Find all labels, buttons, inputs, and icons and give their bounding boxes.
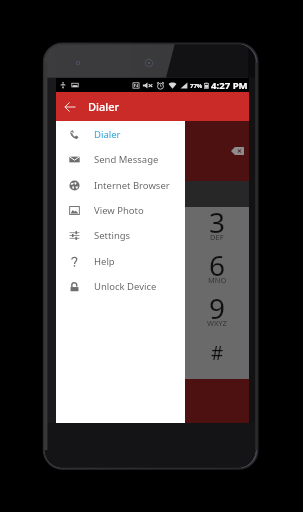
- staticText: 77%: [190, 82, 203, 90]
- staticText: #: [211, 340, 224, 366]
- staticText: Send Message: [94, 153, 159, 166]
- staticText: DEF: [210, 232, 224, 242]
- button[interactable]: Backspace: [231, 147, 244, 155]
- button[interactable]: 2: [121, 207, 185, 250]
- button[interactable]: Dialer: [56, 122, 185, 147]
- staticText: 5: [145, 246, 162, 284]
- button[interactable]: Settings: [56, 223, 185, 248]
- staticText: 4: [80, 246, 97, 284]
- staticText: Settings: [94, 229, 131, 242]
- button[interactable]: Send Message: [56, 147, 185, 172]
- staticText: View Photo: [94, 204, 144, 217]
- staticText: 4:27 PM: [211, 79, 248, 92]
- staticText: Unlock Device: [94, 280, 157, 293]
- staticText: Dialer: [94, 128, 121, 141]
- staticText: 8: [145, 289, 162, 327]
- button[interactable]: Back: [62, 99, 78, 115]
- staticText: 3: [209, 203, 226, 241]
- staticText: 7: [80, 289, 97, 327]
- staticText: Help: [94, 255, 115, 268]
- button[interactable]: 1: [56, 207, 121, 250]
- button[interactable]: 3: [185, 207, 249, 250]
- button[interactable]: Internet Browser: [56, 173, 185, 198]
- button[interactable]: 4: [56, 250, 121, 293]
- button[interactable]: Help: [56, 249, 185, 274]
- staticText: GHI: [82, 275, 96, 285]
- button[interactable]: #: [185, 336, 249, 379]
- staticText: Internet Browser: [94, 179, 170, 192]
- button[interactable]: View Photo: [56, 198, 185, 223]
- button[interactable]: 5: [121, 250, 185, 293]
- staticText: 1: [80, 203, 97, 241]
- button[interactable]: 6: [185, 250, 249, 293]
- staticText: WXYZ: [207, 318, 227, 328]
- button[interactable]: Unlock Device: [56, 274, 185, 299]
- staticText: 6: [209, 246, 226, 284]
- button[interactable]: 9: [185, 293, 249, 336]
- staticText: MNO: [208, 275, 227, 285]
- staticText: Dialer: [88, 99, 120, 114]
- staticText: 9: [209, 289, 226, 327]
